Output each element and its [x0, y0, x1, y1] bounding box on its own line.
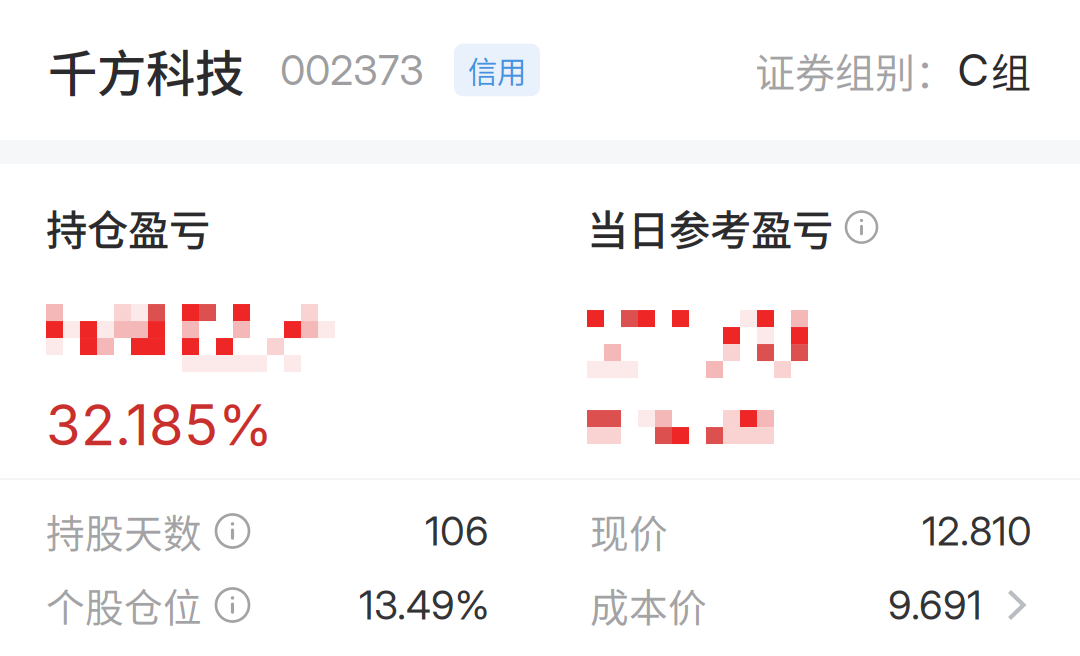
staticText: 002373 — [280, 45, 424, 95]
staticText: 持仓盈亏 — [46, 197, 210, 257]
staticText: 12.810 — [922, 507, 1032, 555]
staticText: 千方科技 — [48, 34, 244, 106]
button[interactable]: 持股天数 — [46, 502, 489, 560]
staticText: C — [957, 43, 989, 97]
staticText: 信用 — [468, 49, 526, 91]
button[interactable]: 成本价 — [590, 576, 1032, 634]
button[interactable]: 个股仓位 — [46, 576, 489, 634]
button[interactable]: 信用 — [454, 44, 540, 96]
staticText: 证券组别： — [755, 41, 955, 99]
staticText: 成本价 — [590, 577, 707, 633]
button[interactable]: 关于当日参考盈亏 — [846, 212, 877, 243]
staticText: 个股仓位 — [46, 577, 202, 633]
staticText: 13.49% — [359, 581, 489, 629]
staticText: 组 — [991, 41, 1031, 99]
staticText: 现价 — [590, 503, 668, 559]
button[interactable]: 现价 — [590, 502, 1032, 560]
staticText: 9.691 — [888, 581, 982, 629]
staticText: 当日参考盈亏 — [587, 197, 833, 257]
staticText: 32.185% — [46, 391, 273, 459]
staticText: 持股天数 — [46, 503, 202, 559]
staticText: 106 — [425, 507, 489, 555]
